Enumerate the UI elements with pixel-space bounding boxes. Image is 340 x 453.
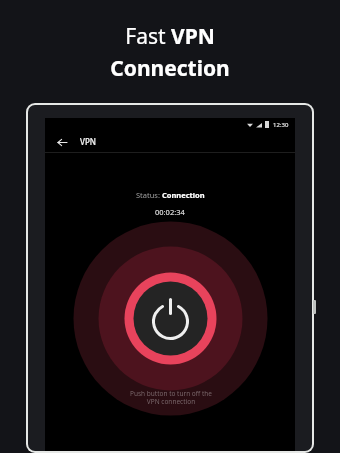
staticText: VPN xyxy=(80,136,97,147)
button[interactable]: Back xyxy=(53,133,71,151)
staticText: Status: Connection xyxy=(136,190,205,200)
staticText: Push button to turn off the VPN connecti… xyxy=(130,389,212,406)
staticText: Fast VPN xyxy=(125,22,215,51)
staticText: 12:30 xyxy=(273,121,289,129)
staticText: 00:02:34 xyxy=(155,207,185,217)
staticText: Connection xyxy=(110,54,230,83)
button[interactable]: Turn off VPN connection xyxy=(73,221,268,416)
